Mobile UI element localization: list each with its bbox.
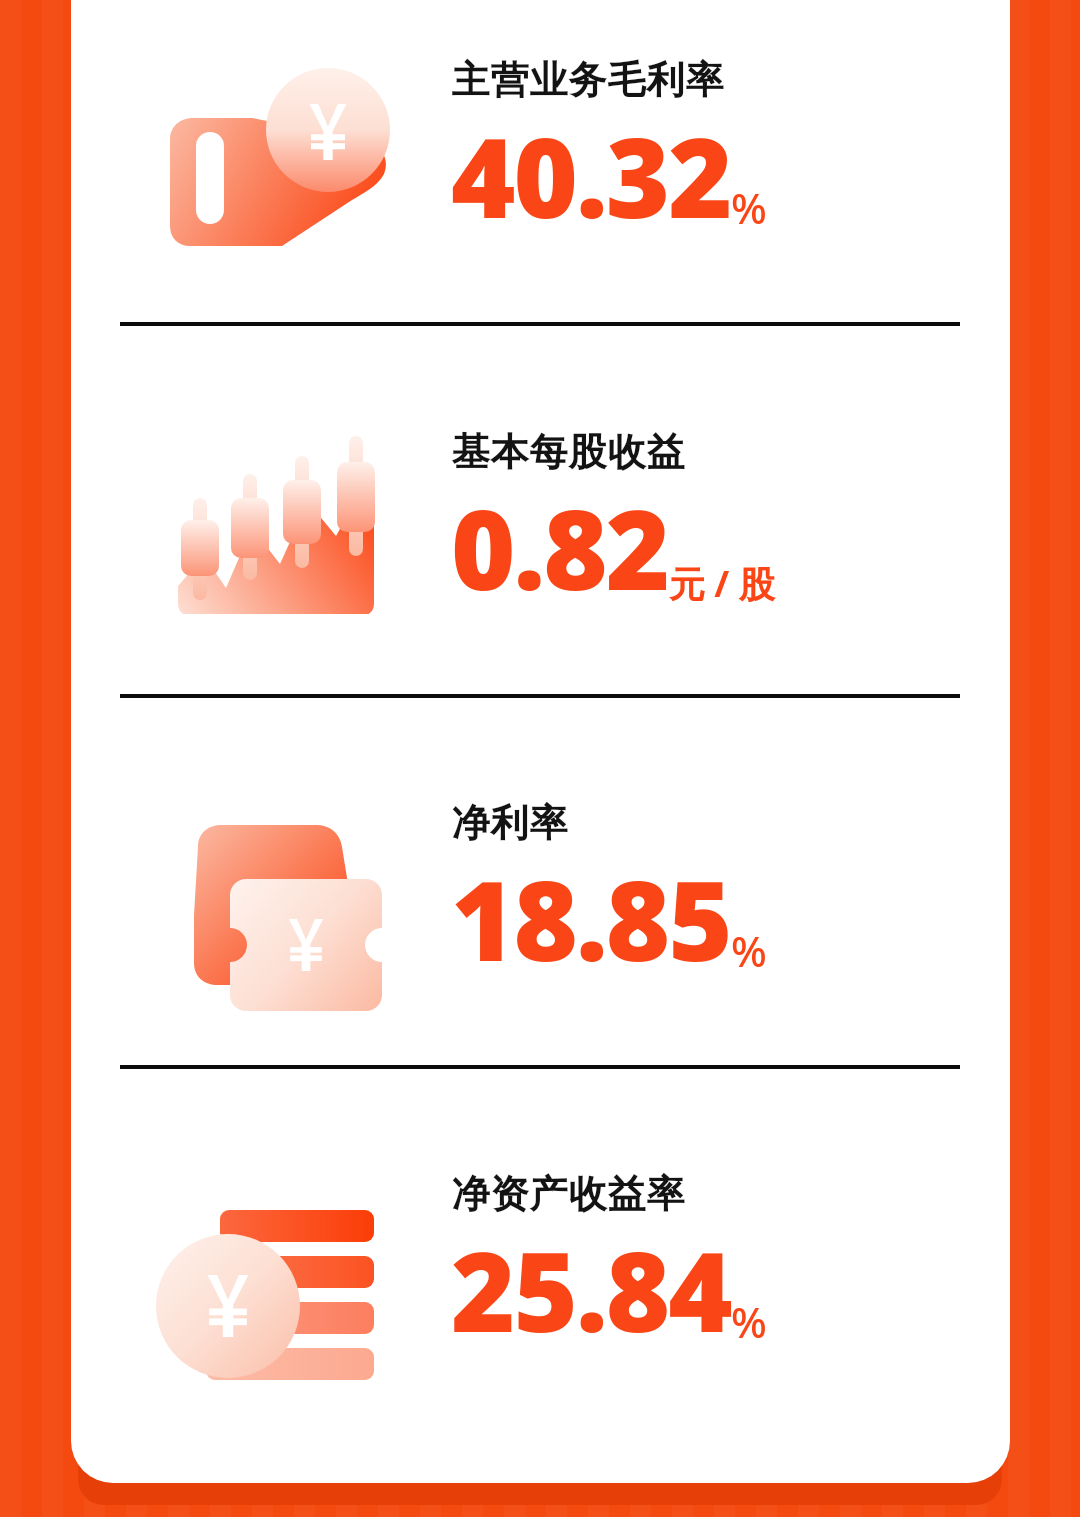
button[interactable]: 主营业务毛利率 xyxy=(71,42,1010,292)
staticText: 净利率 xyxy=(451,799,568,847)
staticText: 元 / 股 xyxy=(669,559,775,608)
button[interactable]: 基本每股收益 xyxy=(71,414,1010,664)
other: 净资产收益率 xyxy=(146,1164,446,1404)
other: 净利率 xyxy=(146,793,446,1033)
staticText: 基本每股收益 xyxy=(451,428,685,476)
staticText: 25.84 xyxy=(451,1214,731,1364)
button[interactable]: 净资产收益率 xyxy=(71,1156,1010,1406)
staticText: 净资产收益率 xyxy=(451,1170,685,1218)
staticText: 主营业务毛利率 xyxy=(451,56,724,104)
staticText: 0.82 xyxy=(451,472,669,622)
staticText: % xyxy=(731,1293,767,1350)
other: 主营业务毛利率 xyxy=(146,50,446,290)
button[interactable]: 净利率 xyxy=(71,785,1010,1035)
staticText: 18.85 xyxy=(451,843,731,993)
staticText: 40.32 xyxy=(451,100,731,250)
staticText: % xyxy=(731,179,767,236)
other: 基本每股收益 xyxy=(146,422,446,662)
staticText: % xyxy=(731,922,767,979)
